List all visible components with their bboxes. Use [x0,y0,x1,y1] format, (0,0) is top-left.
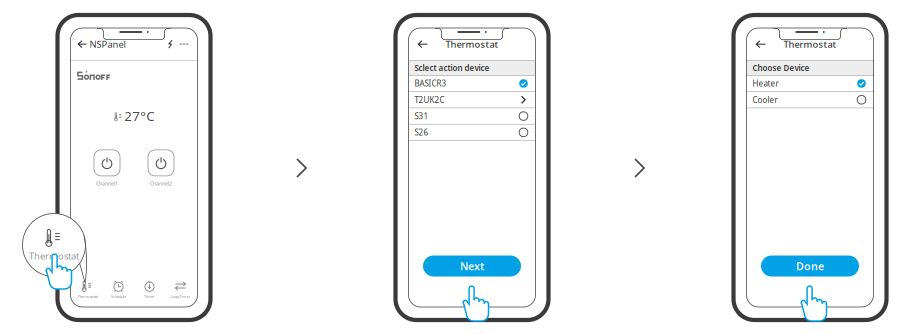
staticText: Loop Timer [170,294,190,299]
staticText: Channel2 [150,180,172,187]
button[interactable]: Cooler [746,92,873,108]
button[interactable]: Share [163,38,176,51]
staticText: S31 [414,111,428,121]
staticText: NSPanel [89,38,125,50]
button[interactable]: Thermostat [72,279,103,300]
button[interactable]: Channel2 [144,150,178,187]
staticText: Sclect action device [414,63,489,73]
button[interactable]: Next [423,255,521,276]
button[interactable]: Heater [746,76,873,92]
button[interactable]: Channel1 [90,150,124,187]
button[interactable]: Done [761,255,859,276]
staticText: S26 [414,127,428,138]
staticText: Next [460,259,484,273]
staticText: 27°C [124,107,154,125]
button[interactable]: Schedule [103,279,134,300]
staticText: T2UK2C [414,94,444,105]
button[interactable]: Back [413,36,431,52]
button[interactable]: BASICR3 [408,76,535,92]
staticText: Channel1 [96,180,118,187]
button[interactable]: Timer [134,279,165,300]
staticText: Thermostat [77,294,97,299]
staticText: Choose Device [752,63,809,73]
staticText: Schedule [111,294,126,299]
staticText: Heater [752,78,778,89]
staticText: Thermostat [29,250,79,262]
staticText: Timer [144,294,155,299]
button[interactable]: S31 [408,108,535,124]
button[interactable]: NSPanel [70,35,125,53]
staticText: BASICR3 [414,78,446,89]
button[interactable]: Back [751,36,769,52]
button[interactable]: Loop Timer [165,279,196,300]
staticText: Thermostat [445,38,498,50]
staticText: Done [796,259,824,273]
button[interactable]: More options [176,38,191,51]
button[interactable]: T2UK2C [408,92,535,108]
staticText: Cooler [752,94,777,105]
staticText: Thermostat [783,38,836,50]
button[interactable]: S26 [408,124,535,141]
